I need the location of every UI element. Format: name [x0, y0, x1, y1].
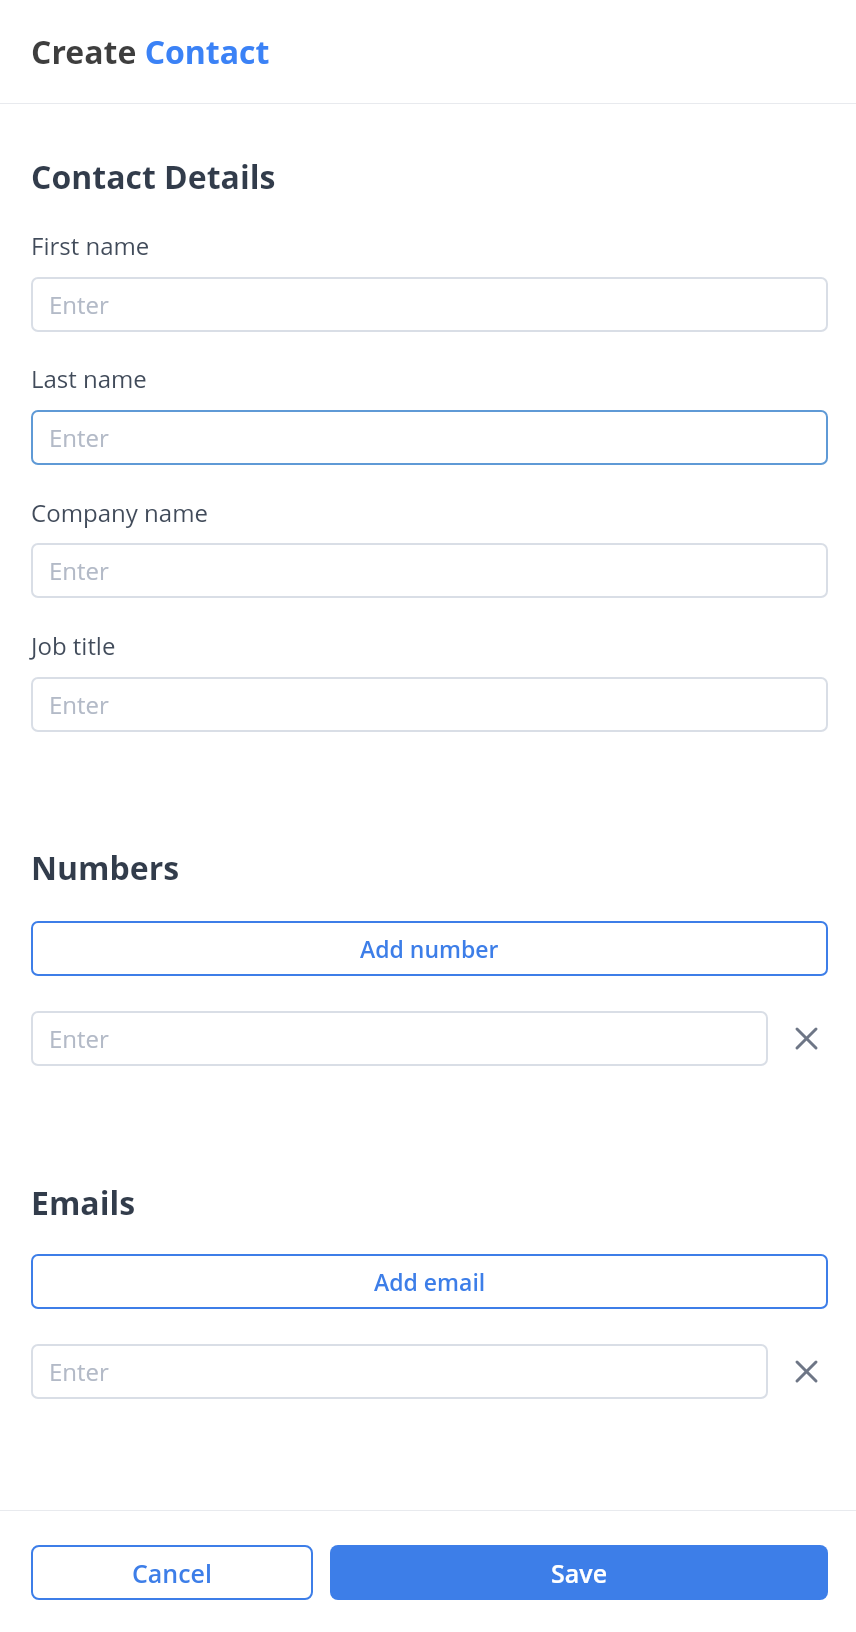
staticText: First name [31, 229, 150, 262]
button[interactable]: Save [330, 1545, 828, 1600]
staticText: Job title [31, 629, 116, 662]
button[interactable] [768, 1011, 828, 1066]
button[interactable]: Enter [31, 677, 828, 732]
staticText: Contact Details [31, 155, 276, 199]
staticText: Create Contact [31, 30, 270, 74]
staticText: Enter [49, 554, 109, 587]
staticText: Add email [374, 1266, 486, 1297]
button[interactable]: Enter [31, 1344, 768, 1399]
button[interactable]: Enter [31, 277, 828, 332]
staticText: Enter [49, 421, 109, 454]
staticText: Add number [360, 933, 499, 964]
staticText: Last name [31, 362, 147, 395]
staticText: Save [551, 1556, 608, 1590]
button[interactable]: Add email [31, 1254, 828, 1309]
button[interactable]: Add number [31, 921, 828, 976]
staticText: Enter [49, 688, 109, 721]
button[interactable]: Enter [31, 410, 828, 465]
staticText: Company name [31, 496, 208, 529]
staticText: Enter [49, 288, 109, 321]
staticText: Enter [49, 1355, 109, 1388]
staticText: Enter [49, 1022, 109, 1055]
button[interactable]: Enter [31, 1011, 768, 1066]
button[interactable]: Cancel [31, 1545, 313, 1600]
staticText: Emails [31, 1181, 136, 1225]
staticText: Cancel [132, 1556, 212, 1590]
button[interactable]: Enter [31, 543, 828, 598]
staticText: Numbers [31, 846, 180, 890]
button[interactable] [768, 1344, 828, 1399]
